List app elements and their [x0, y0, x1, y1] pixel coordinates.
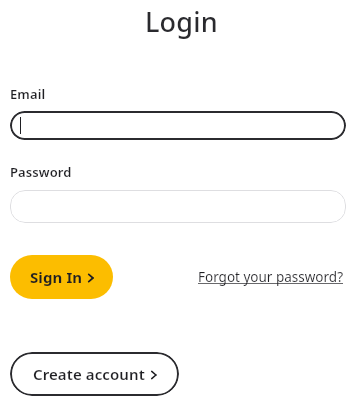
staticText: Email — [10, 85, 46, 103]
staticText: Sign In — [30, 267, 83, 287]
staticText: Password — [10, 163, 72, 181]
button[interactable]: Forgot your password? — [196, 264, 346, 290]
button[interactable]: Password input — [10, 190, 346, 223]
staticText: Create account — [33, 364, 145, 384]
staticText: Forgot your password? — [198, 268, 344, 286]
button[interactable]: Create account — [10, 352, 179, 396]
button[interactable]: Sign In — [10, 255, 113, 299]
staticText: Login — [145, 3, 218, 40]
button[interactable]: Email input — [10, 111, 346, 140]
